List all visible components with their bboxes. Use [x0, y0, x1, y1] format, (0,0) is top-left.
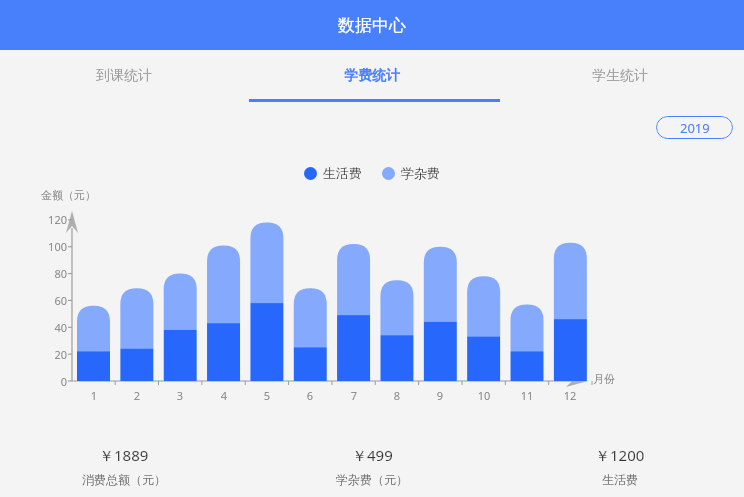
staticText: 3	[167, 388, 193, 403]
staticText: 11	[514, 388, 540, 403]
staticText: 到课统计	[96, 67, 152, 85]
staticText: 数据中心	[338, 15, 406, 36]
staticText: 1	[81, 388, 107, 403]
staticText: 2019	[680, 119, 710, 137]
staticText: 80	[36, 266, 67, 281]
button[interactable]: 2019	[656, 116, 733, 139]
staticText: 学杂费	[401, 165, 440, 181]
staticText: 学杂费（元）	[336, 472, 408, 487]
staticText: 40	[36, 320, 67, 335]
staticText: 12	[557, 388, 583, 403]
staticText: 生活费	[323, 165, 362, 181]
staticText: 9	[427, 388, 453, 403]
staticText: ￥499	[352, 445, 393, 465]
staticText: 60	[36, 293, 67, 308]
staticText: 8	[384, 388, 410, 403]
staticText: 20	[36, 347, 67, 362]
button[interactable]: ￥1889	[0, 440, 248, 487]
staticText: 学费统计	[344, 67, 400, 85]
staticText: 生活费	[602, 472, 638, 487]
staticText: 120	[36, 212, 67, 227]
button[interactable]: 到课统计	[0, 50, 248, 102]
staticText: ￥1889	[99, 445, 149, 465]
staticText: 0	[36, 374, 67, 389]
staticText: 金额（元）	[41, 188, 96, 202]
button[interactable]: 学费统计	[248, 50, 496, 102]
staticText: 7	[341, 388, 367, 403]
staticText: 消费总额（元）	[82, 472, 166, 487]
staticText: 6	[297, 388, 323, 403]
staticText: 100	[36, 239, 67, 254]
staticText: 学生统计	[592, 67, 648, 85]
staticText: 月份	[593, 372, 615, 386]
staticText: 10	[471, 388, 497, 403]
button[interactable]: 学生统计	[496, 50, 744, 102]
button[interactable]: ￥499	[248, 440, 496, 487]
staticText: ￥1200	[595, 445, 645, 465]
staticText: 5	[254, 388, 280, 403]
staticText: 2	[124, 388, 150, 403]
button[interactable]: ￥1200	[496, 440, 744, 487]
staticText: 4	[211, 388, 237, 403]
